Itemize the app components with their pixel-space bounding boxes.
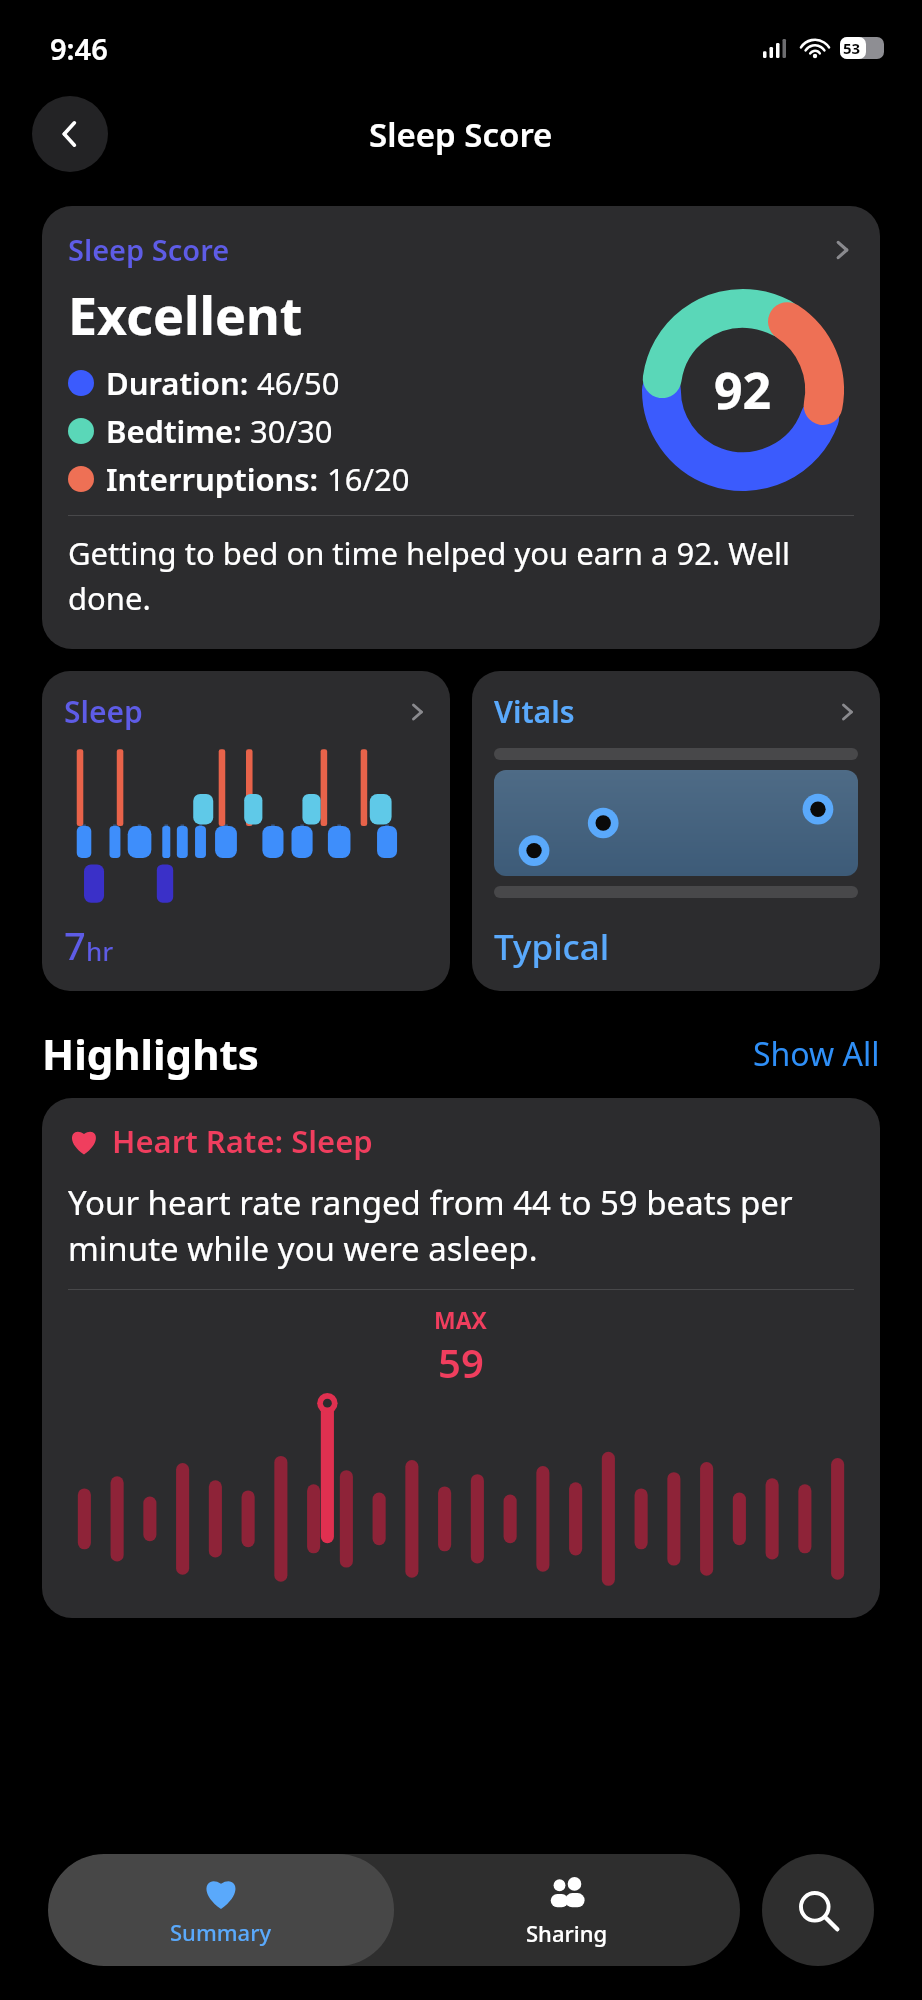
staticText: Summary [170,1917,272,1947]
staticText: Sleep [64,691,143,732]
staticText: 53 [843,38,861,58]
staticText: Sharing [526,1918,608,1948]
button[interactable]: Vitals [472,671,880,991]
staticText: Duration: [106,362,249,404]
staticText: Vitals [494,691,575,732]
button[interactable]: Summary [48,1854,394,1966]
button[interactable]: Show All [753,1032,880,1076]
staticText: Sleep Score [369,112,553,157]
staticText: 7 [64,919,86,971]
staticText: Show All [753,1032,880,1076]
button[interactable]: Sharing [394,1854,740,1966]
button[interactable]: Back [32,96,108,172]
button[interactable]: Sleep [42,671,450,991]
staticText: Bedtime: [106,410,242,452]
staticText: 16/20 [319,458,410,500]
staticText: Sleep Score [68,230,230,269]
staticText: 59 [438,1335,484,1389]
staticText: Excellent [68,279,303,350]
button[interactable]: Search [762,1854,874,1966]
button[interactable]: Sleep Score [42,206,880,649]
staticText: Typical [494,923,610,971]
staticText: 46/50 [249,362,340,404]
staticText: hr [86,933,114,968]
staticText: 9:46 [50,29,108,68]
staticText: 30/30 [242,410,333,452]
staticText: Heart Rate: Sleep [112,1120,373,1162]
button[interactable]: Heart Rate: Sleep [42,1098,880,1618]
staticText: Interruptions: [106,458,319,500]
staticText: 92 [714,356,772,424]
staticText: Getting to bed on time helped you earn a… [68,532,854,619]
staticText: Your heart rate ranged from 44 to 59 bea… [68,1180,854,1271]
staticText: MAX [434,1304,488,1335]
staticText: Highlights [42,1025,259,1082]
